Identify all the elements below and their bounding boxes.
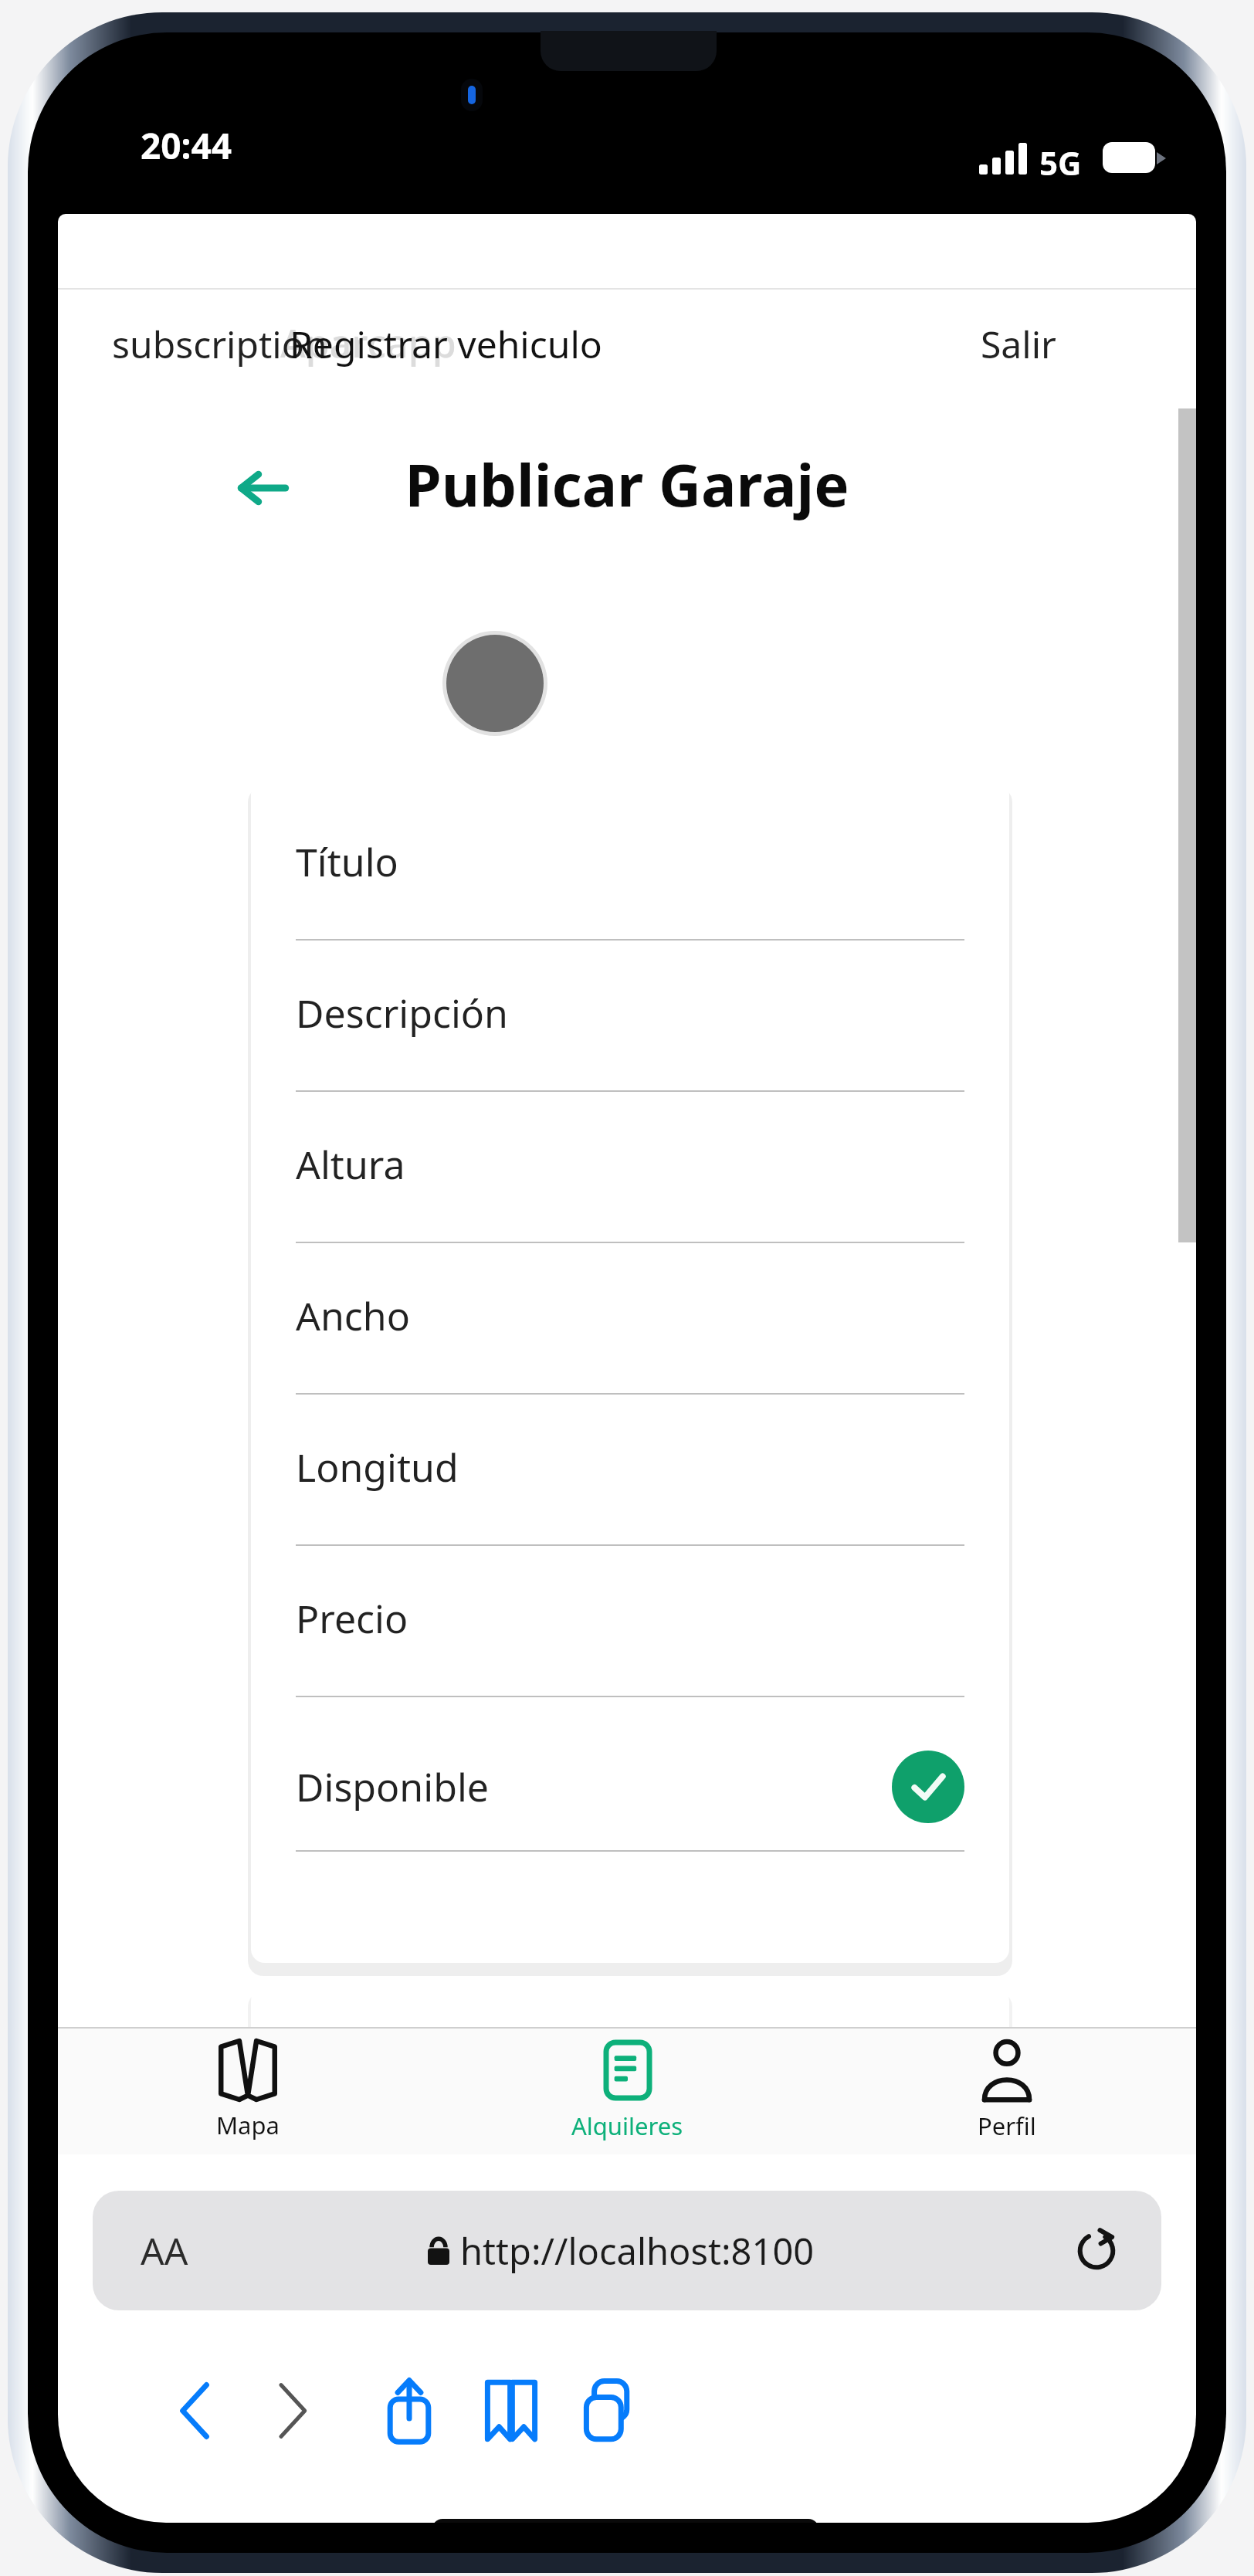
button[interactable]: Forward: [203, 2361, 381, 2461]
staticText: Salir: [981, 319, 1056, 369]
other: Disponible activado: [892, 1751, 964, 1823]
staticText: 20:44: [141, 121, 232, 170]
button[interactable]: Longitud: [251, 1419, 1009, 1571]
button[interactable]: Back: [220, 446, 305, 530]
staticText: Precio: [296, 1592, 408, 1645]
button[interactable]: Share: [320, 2361, 498, 2461]
button[interactable]: AA: [93, 2191, 1161, 2310]
staticText: Registrar vehiculo: [290, 319, 602, 369]
staticText: Ancho: [296, 1290, 410, 1342]
staticText: Título: [296, 836, 398, 888]
staticText: Aparcapp: [280, 317, 456, 369]
staticText: Longitud: [296, 1441, 459, 1493]
button[interactable]: Reload: [1072, 2226, 1121, 2276]
button[interactable]: Tabs: [521, 2361, 699, 2461]
button[interactable]: Registrar vehiculo: [282, 310, 610, 377]
button[interactable]: Salir: [973, 310, 1064, 377]
button[interactable]: Mapa: [58, 2027, 438, 2154]
button[interactable]: Bookmarks: [422, 2361, 600, 2461]
staticText: Alquileres: [571, 2110, 683, 2142]
staticText: Publicar Garaje: [58, 444, 1196, 524]
button[interactable]: Altura: [251, 1117, 1009, 1268]
button[interactable]: Back: [106, 2361, 283, 2461]
staticText: Disponible: [296, 1761, 489, 1813]
staticText: Mapa: [216, 2109, 280, 2141]
button[interactable]: Título: [251, 814, 1009, 965]
button[interactable]: Descripción: [251, 965, 1009, 1117]
button[interactable]: Precio: [251, 1571, 1009, 1722]
button[interactable]: subscription: [104, 310, 335, 377]
staticText: http://localhost:8100: [460, 2226, 815, 2276]
button[interactable]: Ancho: [251, 1268, 1009, 1419]
staticText: 5G: [1039, 141, 1082, 185]
staticText: Altura: [296, 1138, 405, 1191]
staticText: Perfil: [978, 2110, 1036, 2142]
button[interactable]: Perfil: [817, 2027, 1196, 2154]
staticText: Descripción: [296, 987, 508, 1039]
staticText: subscription: [112, 319, 327, 369]
button[interactable]: Disponible: [251, 1722, 1009, 1873]
staticText: AA: [141, 2225, 188, 2276]
button[interactable]: Alquileres: [438, 2027, 817, 2154]
button[interactable]: Avatar: [446, 635, 544, 732]
